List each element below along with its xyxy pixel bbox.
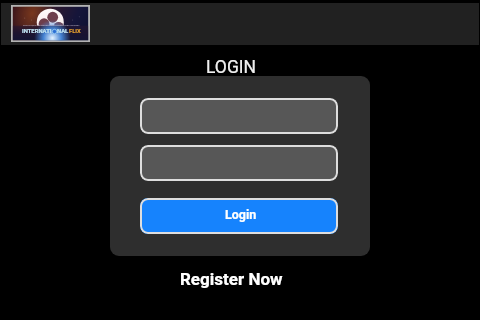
button[interactable]: Username [140, 98, 338, 134]
staticText: FLIX [69, 28, 81, 35]
staticText: Register Now [180, 269, 283, 289]
button[interactable]: International Flix logo [11, 5, 90, 42]
button[interactable]: Password [140, 145, 338, 181]
staticText: WATCH QUALITY MOVIES FROM YOUR HOME COUN… [23, 24, 80, 26]
staticText: NAL [57, 28, 69, 35]
staticText: Login [225, 207, 257, 222]
button[interactable]: Login [140, 198, 338, 234]
button[interactable]: Register Now [151, 267, 311, 291]
staticText: INTERNATI [22, 28, 52, 35]
staticText: LOGIN [206, 57, 257, 78]
